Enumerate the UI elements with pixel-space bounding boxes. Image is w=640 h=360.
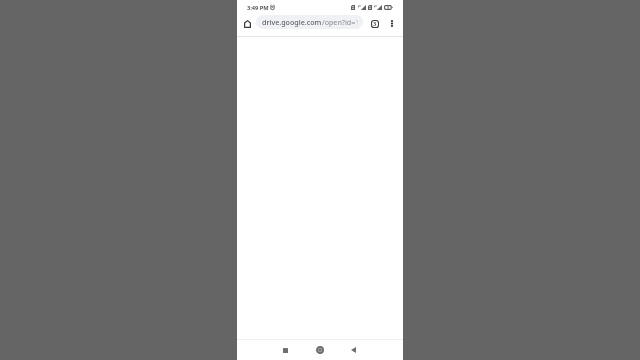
button[interactable]: More options	[384, 16, 399, 31]
button[interactable]: Home	[240, 16, 255, 31]
staticText: 3:49 PM	[247, 4, 269, 12]
button[interactable]: Home	[310, 340, 330, 360]
staticText: /open?id=1	[322, 17, 360, 27]
staticText: drive.google.com	[262, 17, 322, 27]
button[interactable]: Back	[343, 340, 363, 360]
staticText: 3	[373, 20, 377, 28]
button[interactable]: drive.google.com	[256, 15, 363, 29]
button[interactable]: Tabs, 3 open	[367, 16, 382, 31]
button[interactable]: Recent apps	[275, 340, 295, 360]
